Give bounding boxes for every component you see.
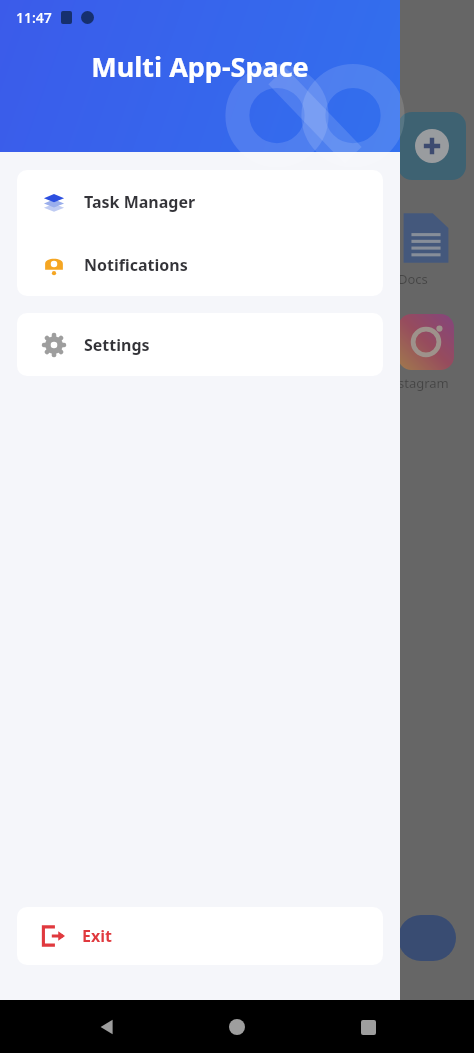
button[interactable]: Instagram xyxy=(398,314,454,370)
staticText: Notifications xyxy=(84,254,188,276)
button[interactable]: Back xyxy=(83,1003,131,1051)
button[interactable]: Exit xyxy=(17,907,383,965)
staticText: Settings xyxy=(84,334,150,356)
button[interactable]: Task Manager xyxy=(17,170,383,233)
button[interactable]: Add app xyxy=(398,112,466,180)
button[interactable]: Docs xyxy=(398,210,454,266)
staticText: Task Manager xyxy=(84,191,196,213)
button[interactable]: Recent apps xyxy=(344,1003,392,1051)
button[interactable]: Notifications xyxy=(17,233,383,296)
staticText: Multi App-Space xyxy=(91,48,309,85)
button[interactable]: Home xyxy=(213,1003,261,1051)
staticText: Exit xyxy=(82,925,112,947)
staticText: 11:47 xyxy=(16,8,52,27)
staticText: stagram xyxy=(398,374,449,392)
button[interactable]: Settings xyxy=(17,313,383,376)
staticText: Docs xyxy=(398,270,428,288)
